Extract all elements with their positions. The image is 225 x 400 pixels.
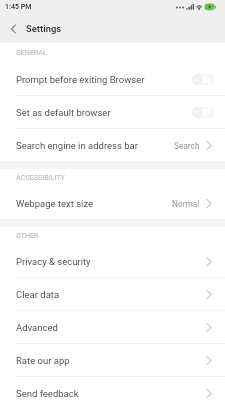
staticText: Prompt before exiting Browser bbox=[16, 74, 145, 85]
button[interactable]: Toggle bbox=[192, 107, 214, 118]
button[interactable]: Send feedback bbox=[0, 377, 225, 400]
staticText: Webpage text size bbox=[16, 198, 94, 209]
staticText: 1:45 PM bbox=[5, 3, 32, 11]
staticText: Search bbox=[174, 141, 200, 151]
button[interactable]: Rate our app bbox=[0, 344, 225, 376]
button[interactable]: Search engine in address bar bbox=[0, 129, 225, 161]
staticText: GENERAL bbox=[16, 48, 47, 56]
staticText: Search engine in address bar bbox=[16, 140, 138, 151]
button[interactable]: Set as default browser bbox=[0, 96, 225, 128]
staticText: Privacy & security bbox=[16, 256, 91, 267]
button[interactable]: Privacy & security bbox=[0, 245, 225, 277]
staticText: Set as default browser bbox=[16, 107, 111, 118]
button[interactable]: Advanced bbox=[0, 311, 225, 343]
button[interactable]: Back bbox=[3, 14, 25, 43]
staticText: ACCESSIBILITY bbox=[16, 173, 65, 181]
button[interactable]: Clear data bbox=[0, 278, 225, 310]
staticText: Advanced bbox=[16, 322, 58, 333]
staticText: Clear data bbox=[16, 289, 60, 300]
button[interactable]: Toggle bbox=[192, 74, 214, 85]
staticText: Send feedback bbox=[16, 388, 79, 399]
staticText: OTHER bbox=[16, 231, 39, 239]
staticText: Settings bbox=[26, 23, 62, 34]
staticText: Rate our app bbox=[16, 355, 70, 366]
staticText: Normal bbox=[172, 199, 200, 209]
button[interactable]: Webpage text size bbox=[0, 187, 225, 219]
button[interactable]: Prompt before exiting Browser bbox=[0, 63, 225, 95]
